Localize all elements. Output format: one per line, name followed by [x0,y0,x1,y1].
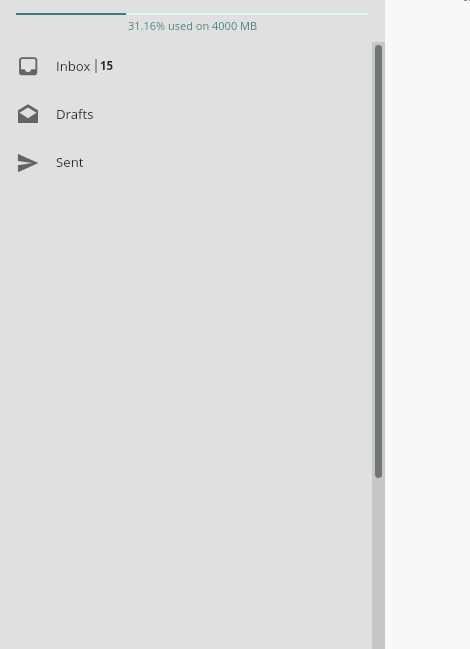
staticText: Inbox [56,57,91,75]
staticText: Drafts [56,105,94,123]
button[interactable]: Drafts [0,90,385,138]
button[interactable]: Sent [0,138,385,186]
button[interactable]: Inbox [0,42,385,90]
staticText: 15 [100,58,114,74]
staticText: 31.16% used on 4000 MB [128,18,258,33]
staticText: Sent [56,153,84,171]
